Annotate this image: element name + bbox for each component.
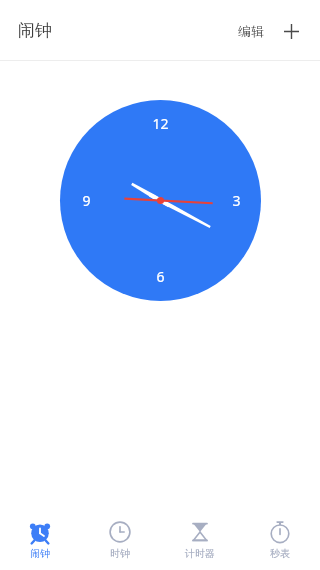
staticText: 9 bbox=[82, 191, 91, 210]
staticText: 闹钟 bbox=[30, 547, 50, 560]
button[interactable]: Add alarm bbox=[278, 18, 304, 44]
staticText: 3 bbox=[232, 191, 241, 210]
button[interactable]: 计时器 bbox=[160, 510, 240, 570]
staticText: 编辑 bbox=[238, 23, 264, 39]
staticText: 6 bbox=[156, 267, 165, 286]
staticText: 12 bbox=[152, 114, 169, 133]
staticText: 计时器 bbox=[185, 547, 215, 560]
staticText: 闹钟 bbox=[18, 20, 52, 41]
button[interactable]: 编辑 bbox=[234, 17, 268, 45]
button[interactable]: 闹钟 bbox=[0, 510, 80, 570]
staticText: 时钟 bbox=[110, 547, 130, 560]
button[interactable]: 时钟 bbox=[80, 510, 160, 570]
staticText: 秒表 bbox=[270, 547, 290, 560]
button[interactable]: 秒表 bbox=[240, 510, 320, 570]
